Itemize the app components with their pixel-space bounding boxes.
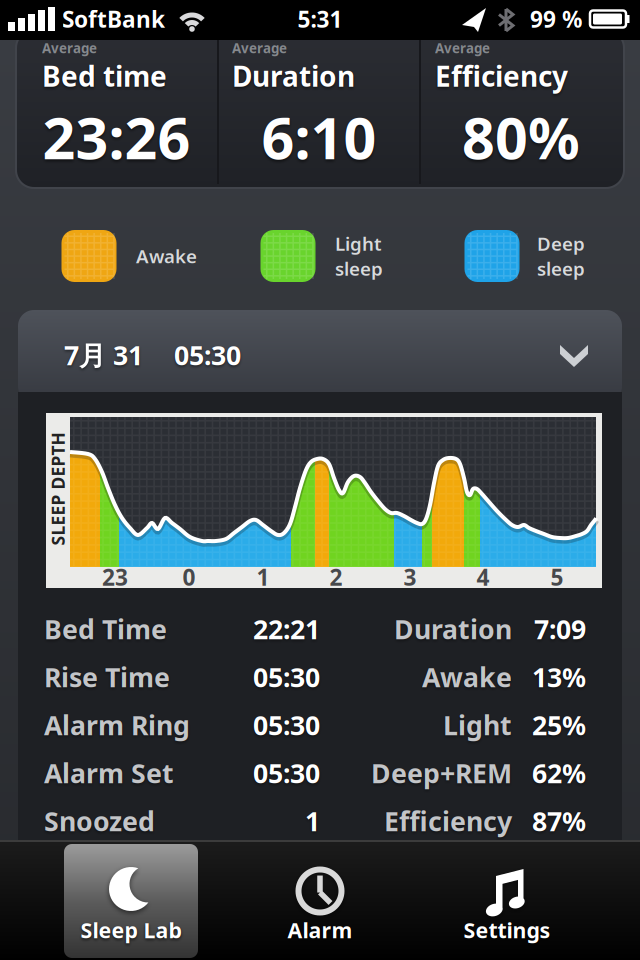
staticText: 22:21 <box>253 611 320 647</box>
staticText: 5 <box>550 562 563 592</box>
staticText: 23:26 <box>42 99 190 175</box>
staticText: 5:31 <box>297 4 342 34</box>
staticText: 62% <box>532 755 586 791</box>
staticText: Alarm <box>287 916 352 944</box>
button[interactable]: Alarm <box>245 844 395 958</box>
staticText: Rise Time <box>44 659 170 695</box>
staticText: 80% <box>462 99 580 175</box>
staticText: Deep <box>537 231 585 256</box>
staticText: 05:30 <box>253 707 320 743</box>
staticText: Light <box>443 707 512 743</box>
staticText: SLEEP DEPTH <box>1 477 114 500</box>
staticText: Alarm Ring <box>44 707 190 743</box>
staticText: Bed Time <box>44 611 167 647</box>
staticText: 7:09 <box>534 611 586 647</box>
staticText: Efficiency <box>384 803 512 839</box>
staticText: Average <box>42 39 97 57</box>
staticText: 6:10 <box>261 99 376 175</box>
staticText: sleep <box>335 256 383 281</box>
staticText: Settings <box>463 916 550 944</box>
staticText: 23 <box>102 562 128 592</box>
staticText: 7月 31 <box>64 337 143 373</box>
staticText: Light <box>335 231 382 256</box>
staticText: 0 <box>182 562 195 592</box>
staticText: Average <box>232 39 287 57</box>
staticText: Awake <box>136 244 197 268</box>
staticText: 1 <box>256 562 269 592</box>
staticText: Alarm Set <box>44 755 174 791</box>
staticText: 87% <box>532 803 586 839</box>
staticText: sleep <box>537 256 585 281</box>
button[interactable]: Settings <box>432 844 582 958</box>
staticText: Sleep Lab <box>80 916 181 944</box>
staticText: 99 % <box>530 4 582 34</box>
staticText: 13% <box>532 659 586 695</box>
staticText: 1 <box>305 803 320 839</box>
staticText: Bed time <box>42 57 167 95</box>
staticText: 05:30 <box>253 755 320 791</box>
staticText: Duration <box>394 611 512 647</box>
staticText: 05:30 <box>174 337 241 373</box>
staticText: Efficiency <box>435 57 568 95</box>
staticText: 3 <box>403 562 416 592</box>
staticText: 25% <box>532 707 586 743</box>
staticText: 05:30 <box>253 659 320 695</box>
button[interactable]: 7月 31 <box>18 310 622 392</box>
staticText: 2 <box>329 562 342 592</box>
staticText: Awake <box>422 659 512 695</box>
staticText: 4 <box>476 562 489 592</box>
staticText: Duration <box>232 57 355 95</box>
staticText: Average <box>435 39 490 57</box>
staticText: SoftBank <box>62 4 165 34</box>
staticText: Deep+REM <box>371 755 512 791</box>
staticText: Snoozed <box>44 803 155 839</box>
button[interactable]: Sleep Lab <box>64 844 198 958</box>
